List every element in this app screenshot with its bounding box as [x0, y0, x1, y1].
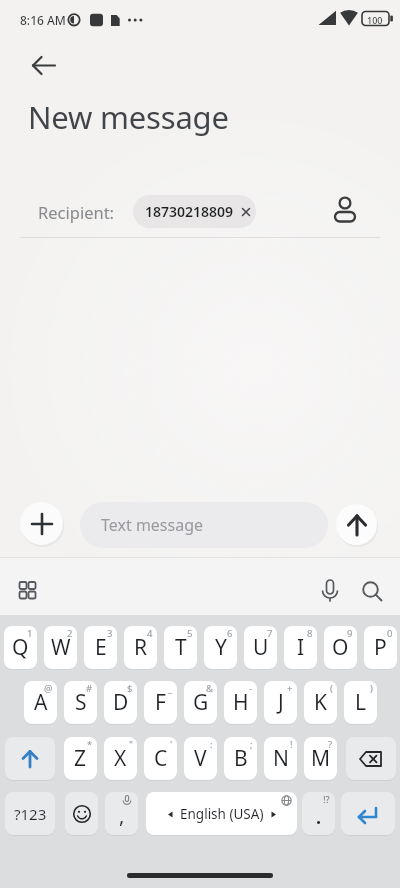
- staticText: _: [168, 682, 173, 695]
- button[interactable]: P: [364, 626, 397, 669]
- button[interactable]: U: [244, 626, 277, 669]
- button[interactable]: B: [224, 737, 257, 780]
- button[interactable]: X: [104, 737, 137, 780]
- staticText: 3: [107, 627, 113, 640]
- button[interactable]: [20, 502, 63, 545]
- staticText: L: [355, 688, 367, 717]
- staticText: K: [314, 688, 327, 717]
- staticText: C: [154, 744, 168, 773]
- button[interactable]: ,: [105, 792, 138, 835]
- button[interactable]: R: [124, 626, 157, 669]
- staticText: G: [193, 688, 209, 717]
- button[interactable]: O: [324, 626, 357, 669]
- button[interactable]: K: [304, 681, 337, 724]
- staticText: +: [287, 682, 293, 695]
- staticText: ): [370, 682, 373, 695]
- staticText: V: [194, 744, 207, 773]
- button[interactable]: [341, 792, 395, 835]
- button[interactable]: [346, 737, 396, 780]
- button[interactable]: M: [304, 737, 337, 780]
- button[interactable]: W: [44, 626, 77, 669]
- staticText: A: [34, 688, 48, 717]
- staticText: New message: [28, 96, 229, 138]
- staticText: W: [51, 633, 71, 662]
- staticText: Y: [215, 633, 227, 662]
- button[interactable]: 18730218809: [133, 195, 256, 228]
- button[interactable]: E: [84, 626, 117, 669]
- button[interactable]: I: [284, 626, 317, 669]
- button[interactable]: [310, 571, 350, 611]
- button[interactable]: V: [184, 737, 217, 780]
- staticText: I: [297, 633, 305, 662]
- button[interactable]: Text message: [80, 502, 328, 548]
- button[interactable]: .: [302, 792, 335, 835]
- button[interactable]: English (USA): [146, 792, 297, 835]
- staticText: ;: [250, 738, 253, 751]
- button[interactable]: N: [264, 737, 297, 780]
- staticText: 2: [67, 627, 73, 640]
- button[interactable]: F: [144, 681, 177, 724]
- button[interactable]: A: [24, 681, 57, 724]
- staticText: ': [170, 738, 173, 751]
- button[interactable]: L: [344, 681, 377, 724]
- staticText: U: [253, 633, 269, 662]
- button[interactable]: J: [264, 681, 297, 724]
- button[interactable]: T: [164, 626, 197, 669]
- button[interactable]: Z: [64, 737, 97, 780]
- staticText: !: [290, 738, 293, 751]
- staticText: 8: [307, 627, 313, 640]
- button[interactable]: [65, 792, 98, 835]
- staticText: O: [332, 633, 349, 662]
- button[interactable]: [324, 190, 368, 234]
- staticText: #: [86, 682, 93, 695]
- staticText: X: [114, 744, 127, 773]
- staticText: Z: [74, 744, 87, 773]
- staticText: N: [273, 744, 289, 773]
- staticText: D: [113, 688, 129, 717]
- staticText: $: [127, 682, 133, 695]
- staticText: ": [129, 738, 133, 751]
- staticText: J: [278, 688, 284, 717]
- button[interactable]: Q: [4, 626, 37, 669]
- button[interactable]: [5, 737, 55, 780]
- button[interactable]: [7, 571, 47, 611]
- staticText: F: [155, 688, 166, 717]
- staticText: *: [87, 738, 93, 751]
- button[interactable]: Y: [204, 626, 237, 669]
- staticText: Text message: [101, 514, 204, 536]
- button[interactable]: [336, 504, 377, 545]
- staticText: 6: [227, 627, 233, 640]
- staticText: B: [234, 744, 248, 773]
- staticText: ,: [119, 802, 125, 829]
- staticText: ?123: [14, 804, 47, 824]
- button[interactable]: C: [144, 737, 177, 780]
- button[interactable]: D: [104, 681, 137, 724]
- staticText: !?: [323, 793, 330, 806]
- staticText: 9: [347, 627, 353, 640]
- staticText: 100: [367, 14, 383, 26]
- button[interactable]: [20, 42, 66, 88]
- button[interactable]: H: [224, 681, 257, 724]
- staticText: S: [75, 688, 87, 717]
- staticText: T: [175, 633, 187, 662]
- staticText: :: [210, 738, 213, 751]
- staticText: 8:16 AM: [20, 12, 66, 28]
- button[interactable]: ?123: [5, 792, 55, 835]
- staticText: -: [249, 682, 253, 695]
- button[interactable]: [352, 571, 392, 611]
- button[interactable]: S: [64, 681, 97, 724]
- staticText: 0: [387, 627, 393, 640]
- staticText: Q: [12, 633, 29, 662]
- staticText: R: [134, 633, 148, 662]
- staticText: 18730218809: [145, 202, 234, 221]
- staticText: .: [316, 805, 322, 830]
- button[interactable]: G: [184, 681, 217, 724]
- staticText: 4: [147, 627, 153, 640]
- staticText: &: [206, 682, 213, 695]
- staticText: ?: [328, 738, 333, 751]
- staticText: H: [233, 688, 249, 717]
- staticText: Recipient:: [38, 201, 115, 223]
- staticText: E: [95, 633, 107, 662]
- staticText: M: [311, 744, 331, 773]
- staticText: English (USA): [180, 805, 264, 823]
